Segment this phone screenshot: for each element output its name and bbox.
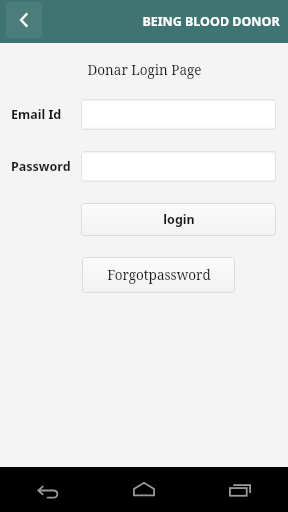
staticText: Donar Login Page [87, 61, 202, 79]
button[interactable] [81, 151, 276, 182]
staticText: Forgotpassword [107, 266, 211, 284]
staticText: login [163, 211, 195, 228]
button[interactable]: Back [24, 467, 72, 512]
button[interactable] [81, 99, 276, 130]
staticText: BEING BLOOD DONOR [142, 13, 280, 30]
button[interactable]: Back [6, 2, 42, 38]
button[interactable]: login [81, 203, 276, 236]
staticText: Email Id [11, 106, 62, 123]
staticText: Password [11, 158, 71, 175]
button[interactable]: Forgotpassword [82, 257, 235, 293]
button[interactable]: Home [120, 467, 168, 512]
button[interactable]: Recent apps [216, 467, 264, 512]
